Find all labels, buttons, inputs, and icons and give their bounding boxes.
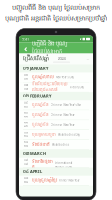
button[interactable]: Back [22, 42, 29, 53]
staticText: ០១ JANUARY [23, 65, 49, 72]
staticText: ០៧ [24, 83, 28, 87]
staticText: ចូលឆ្នាំសកល [32, 74, 54, 80]
button[interactable]: ១១ [19, 120, 93, 130]
staticText: ១៤ [24, 180, 28, 184]
staticText: Chinese New Year's Eve [50, 103, 81, 107]
staticText: ១១ [24, 115, 28, 119]
staticText: បុណ្យជាតិ អន្តរជាតិ ថ្ងៃឈប់សម្រាកប្រចាំឆ… [5, 14, 107, 23]
staticText: ២៤ [24, 131, 28, 135]
staticText: Victory Day [69, 85, 83, 89]
button[interactable]: ០៧ [19, 82, 93, 92]
staticText: ០៧ [24, 87, 28, 91]
staticText: ០៤ APRIL [23, 169, 42, 175]
staticText: International Women's Day [54, 161, 72, 168]
staticText: ⌄ [86, 57, 89, 61]
staticText: បុណ្យមាឃបូជា [32, 132, 56, 138]
button[interactable]: ១៣ [19, 176, 93, 186]
button[interactable]: ២៥ [19, 140, 93, 150]
staticText: ជ្រើសរើសឆ្នាំ [23, 55, 49, 63]
button[interactable]: ១០ [19, 110, 93, 120]
staticText: ០៨ [24, 159, 28, 163]
staticText: ០៨ [24, 163, 28, 166]
staticText: Meak Bochea [51, 143, 68, 146]
staticText: ០៩ [24, 101, 28, 105]
staticText: 2024 [57, 56, 65, 61]
staticText: ទិវាជនជាតិ [32, 142, 50, 147]
staticText: ២៥ [24, 145, 28, 148]
staticText: ទិវានារីអន្តរជាតិ [32, 159, 53, 170]
staticText: ០២ FEBRUARY [23, 93, 52, 99]
staticText: Chinese New Year [50, 113, 74, 117]
staticText: បញ្ជីពិធី និង បុណ្យ ថ្ងៃឈប់សម្រាក [32, 40, 68, 56]
staticText: ០១ [24, 73, 28, 77]
button[interactable]: ២៤ [19, 130, 93, 140]
staticText: ទិវាជ័យជម្នះលើរបបប្រល័យពូជសាសន៍ [32, 81, 68, 93]
staticText: ០៣ MARCH [23, 151, 46, 157]
staticText: ១០ [24, 105, 28, 109]
staticText: បុណ្យចូលឆ្នាំខ្មែរ [32, 178, 57, 183]
staticText: ០១ [24, 77, 28, 81]
staticText: ១១ [24, 121, 28, 125]
staticText: បញ្ជូលពីធី និង បុណ្យ ថ្ងៃឈប់សម្រាក [12, 3, 100, 13]
staticText: Khmer New Year [58, 179, 79, 182]
staticText: ១២ [24, 125, 28, 129]
staticText: ▾ [79, 37, 81, 41]
staticText: ២៥ [24, 141, 28, 145]
button[interactable]: ០១ [19, 72, 93, 82]
staticText: Meak Bochea Day [57, 133, 79, 136]
button[interactable]: 2024 [53, 56, 70, 62]
button[interactable]: ០៩ [19, 100, 93, 110]
staticText: ចូលឆ្នាំចិន [32, 122, 49, 128]
button[interactable]: ០៨ [19, 158, 93, 168]
staticText: ចូលឆ្នាំចិន [32, 112, 49, 118]
staticText: ២៤ [24, 135, 28, 139]
staticText: ១០ [24, 111, 28, 115]
staticText: 9:41 [22, 36, 29, 42]
staticText: ចូលឆ្នាំចិន [32, 102, 49, 108]
staticText: Chinese New Year [50, 123, 74, 127]
staticText: New Year's Day [55, 75, 73, 79]
staticText: ១៣ [24, 177, 28, 180]
staticText: ‹ [24, 42, 27, 54]
